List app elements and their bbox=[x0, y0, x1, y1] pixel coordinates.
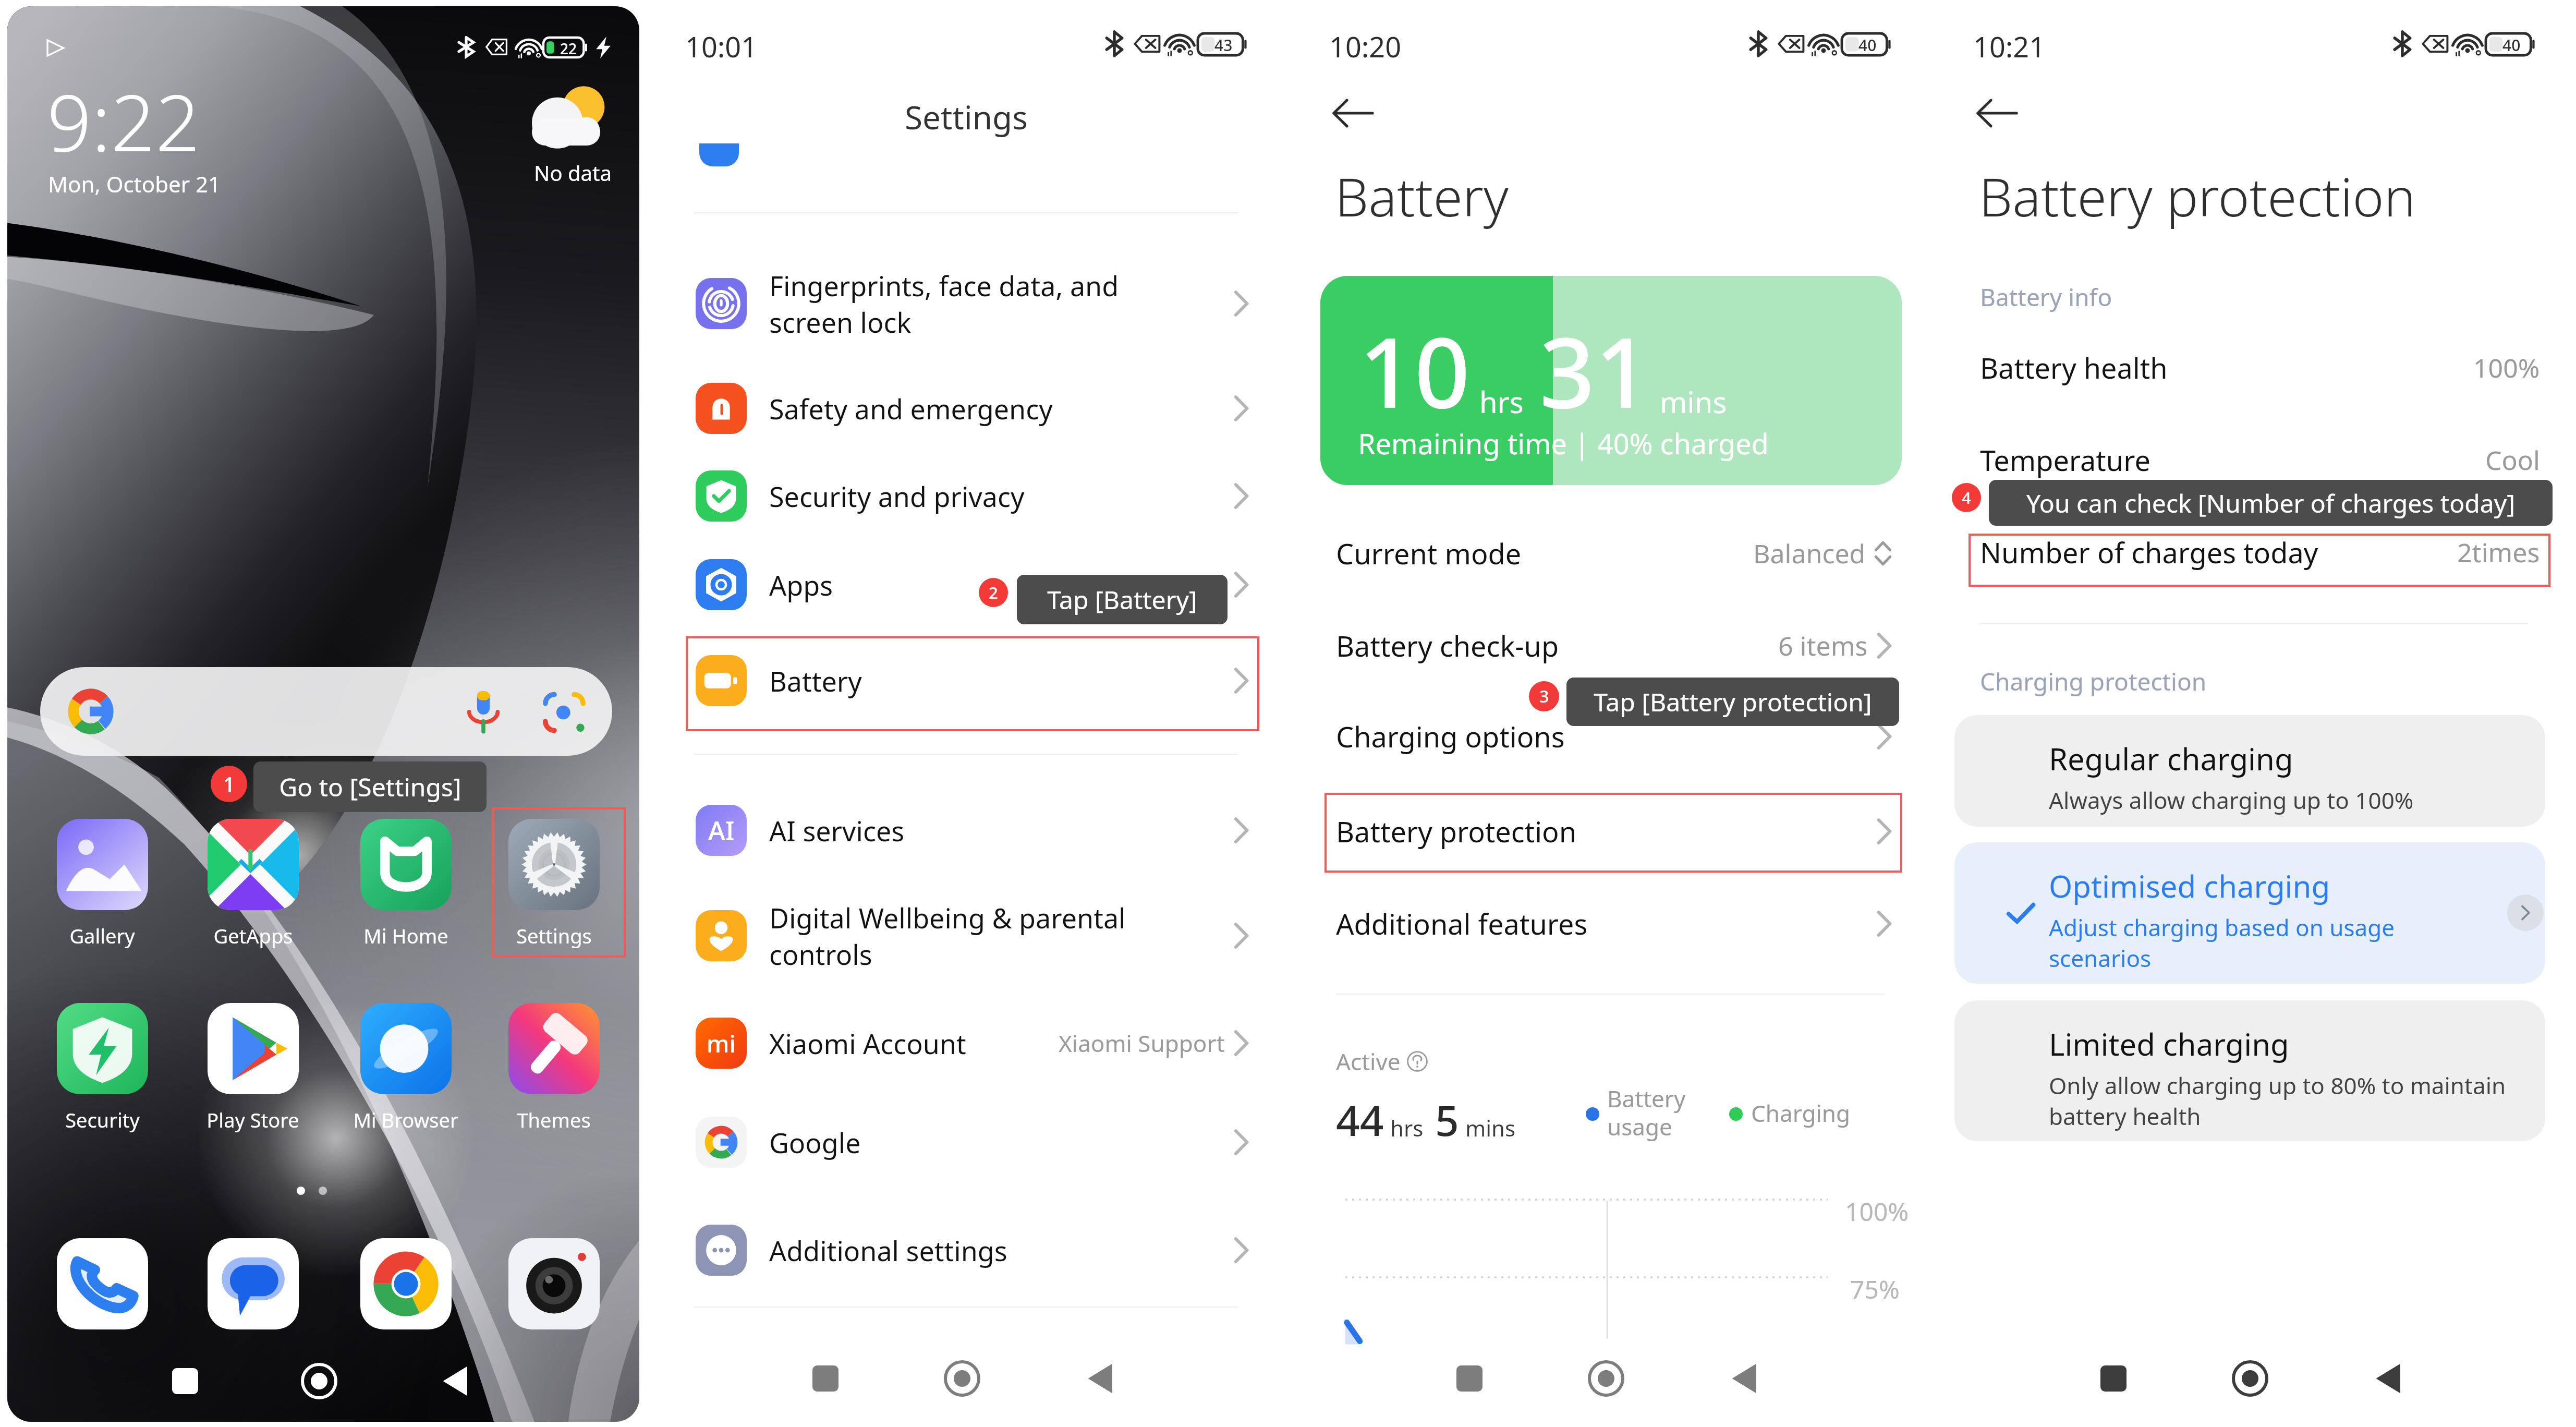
button[interactable]: Mi Home bbox=[338, 814, 473, 950]
staticText: Go to [Settings] bbox=[279, 770, 461, 804]
staticText: 2 bbox=[989, 582, 998, 603]
staticText: 10:20 bbox=[1329, 27, 1402, 66]
button[interactable]: Temperature bbox=[1969, 433, 2550, 487]
button[interactable]: Chrome bbox=[359, 1238, 453, 1332]
button[interactable]: Additional features bbox=[1325, 884, 1902, 963]
button[interactable]: Battery protection bbox=[1325, 792, 1902, 871]
button[interactable]: Back bbox=[2360, 1350, 2416, 1407]
button[interactable]: Digital Wellbeing & parental controls bbox=[685, 891, 1258, 980]
button[interactable]: Regular charging bbox=[1954, 715, 2545, 827]
button[interactable]: Home bbox=[291, 1353, 347, 1409]
staticText: 4 bbox=[1962, 487, 1971, 509]
button[interactable]: Home bbox=[1578, 1350, 1634, 1407]
staticText: Limited charging bbox=[2049, 1023, 2289, 1065]
staticText: Additional features bbox=[1336, 904, 1876, 943]
staticText: Balanced bbox=[1753, 536, 1866, 571]
button[interactable]: Additional settings bbox=[685, 1206, 1258, 1295]
button[interactable]: Phone bbox=[55, 1238, 149, 1332]
button[interactable]: Recents bbox=[157, 1353, 213, 1409]
button[interactable]: Themes bbox=[486, 998, 622, 1134]
staticText: Charging protection bbox=[1980, 665, 2207, 698]
staticText: Apps bbox=[769, 566, 1233, 603]
staticText: mins bbox=[1465, 1113, 1516, 1143]
button[interactable]: 10 bbox=[1320, 276, 1902, 485]
staticText: 40 bbox=[2502, 34, 2521, 54]
staticText: AI services bbox=[769, 812, 1233, 849]
button[interactable]: Back bbox=[1716, 1350, 1772, 1407]
staticText: Mi Browser bbox=[353, 1106, 458, 1133]
staticText: hrs bbox=[1479, 382, 1524, 421]
staticText: Charging bbox=[1751, 1097, 1851, 1129]
staticText: Battery health bbox=[1980, 348, 2473, 387]
button[interactable]: Back bbox=[1965, 90, 2028, 137]
button[interactable]: Play Store bbox=[185, 998, 321, 1134]
button[interactable]: Recents bbox=[1441, 1350, 1498, 1407]
staticText: 40 bbox=[1858, 34, 1877, 54]
staticText: 22 bbox=[560, 39, 577, 56]
button[interactable]: mi bbox=[685, 999, 1258, 1087]
button[interactable]: Back bbox=[427, 1353, 483, 1409]
staticText: 1 bbox=[223, 770, 235, 798]
button[interactable]: Gallery bbox=[34, 814, 170, 950]
button[interactable]: Limited charging bbox=[1954, 1000, 2545, 1141]
staticText: Fingerprints, face data, and screen lock bbox=[769, 267, 1233, 341]
staticText: Only allow charging up to 80% to maintai… bbox=[2049, 1070, 2506, 1131]
staticText: Safety and emergency bbox=[769, 390, 1233, 427]
button[interactable]: Optimised charging bbox=[1954, 842, 2545, 984]
staticText: 31 bbox=[1539, 304, 1650, 436]
button[interactable]: Google bbox=[685, 1098, 1258, 1187]
button[interactable]: Home bbox=[2222, 1350, 2278, 1407]
button[interactable]: Mi Browser bbox=[338, 998, 473, 1134]
button[interactable]: Battery health bbox=[1969, 341, 2550, 394]
staticText: 3 bbox=[1539, 685, 1549, 708]
staticText: Battery protection bbox=[1979, 160, 2416, 232]
staticText: Regular charging bbox=[2049, 738, 2293, 779]
staticText: Additional settings bbox=[769, 1232, 1233, 1269]
staticText: Optimised charging bbox=[2049, 865, 2330, 906]
button[interactable]: Battery bbox=[685, 636, 1258, 725]
staticText: mins bbox=[1660, 382, 1727, 421]
button[interactable]: Battery check-up bbox=[1325, 606, 1902, 685]
button[interactable]: Recents bbox=[2085, 1350, 2142, 1407]
staticText: Settings bbox=[905, 95, 1028, 139]
button[interactable]: Apps bbox=[685, 540, 1258, 629]
staticText: Temperature bbox=[1980, 441, 2485, 479]
staticText: Remaining time | 40% charged bbox=[1358, 424, 1769, 463]
button[interactable]: Back bbox=[1072, 1350, 1128, 1407]
button[interactable]: Number of charges today bbox=[1969, 526, 2550, 579]
button[interactable]: Recents bbox=[797, 1350, 854, 1407]
staticText: Charging options bbox=[1336, 717, 1876, 756]
staticText: Google bbox=[769, 1124, 1233, 1161]
button[interactable]: Back bbox=[1321, 90, 1384, 137]
button[interactable] bbox=[40, 667, 612, 756]
staticText: Always allow charging up to 100% bbox=[2049, 784, 2414, 816]
button[interactable]: Security and privacy bbox=[685, 452, 1258, 540]
staticText: 2times bbox=[2457, 535, 2540, 570]
button[interactable]: AI bbox=[685, 786, 1258, 875]
button[interactable]: Settings bbox=[486, 814, 622, 950]
staticText: Mon, October 21 bbox=[48, 169, 221, 199]
button[interactable]: Home bbox=[934, 1350, 990, 1407]
button[interactable]: Messages bbox=[206, 1238, 300, 1332]
staticText: 43 bbox=[1214, 34, 1233, 54]
staticText: Number of charges today bbox=[1980, 533, 2457, 572]
staticText: You can check [Number of charges today] bbox=[2026, 486, 2515, 520]
button[interactable]: Fingerprints, face data, and screen lock bbox=[685, 259, 1258, 348]
staticText: 44 bbox=[1336, 1091, 1384, 1148]
button[interactable]: Camera bbox=[507, 1238, 601, 1332]
button[interactable]: Security bbox=[34, 998, 170, 1134]
button[interactable]: GetApps bbox=[185, 814, 321, 950]
staticText: 100% bbox=[2473, 350, 2540, 385]
staticText: Battery info bbox=[1980, 281, 2112, 313]
staticText: Adjust charging based on usage scenarios bbox=[2049, 912, 2395, 973]
button[interactable]: Charging options bbox=[1325, 697, 1902, 776]
staticText: Play Store bbox=[206, 1106, 299, 1133]
staticText: 100% bbox=[1845, 1194, 1909, 1228]
button[interactable]: Current mode bbox=[1325, 514, 1902, 593]
staticText: Themes bbox=[517, 1106, 591, 1133]
staticText: 5 bbox=[1435, 1091, 1459, 1148]
staticText: Gallery bbox=[69, 922, 135, 949]
button[interactable]: Safety and emergency bbox=[685, 364, 1258, 453]
staticText: Tap [Battery] bbox=[1047, 583, 1197, 616]
staticText: Battery usage bbox=[1607, 1083, 1686, 1142]
